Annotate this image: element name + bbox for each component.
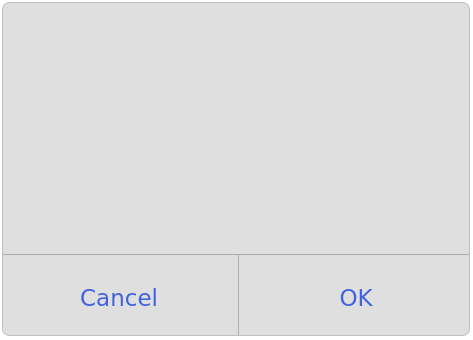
button[interactable]: Cancel	[2, 255, 238, 336]
staticText: OK	[339, 285, 373, 312]
button[interactable]: OK	[239, 255, 470, 336]
staticText: Cancel	[80, 285, 158, 312]
